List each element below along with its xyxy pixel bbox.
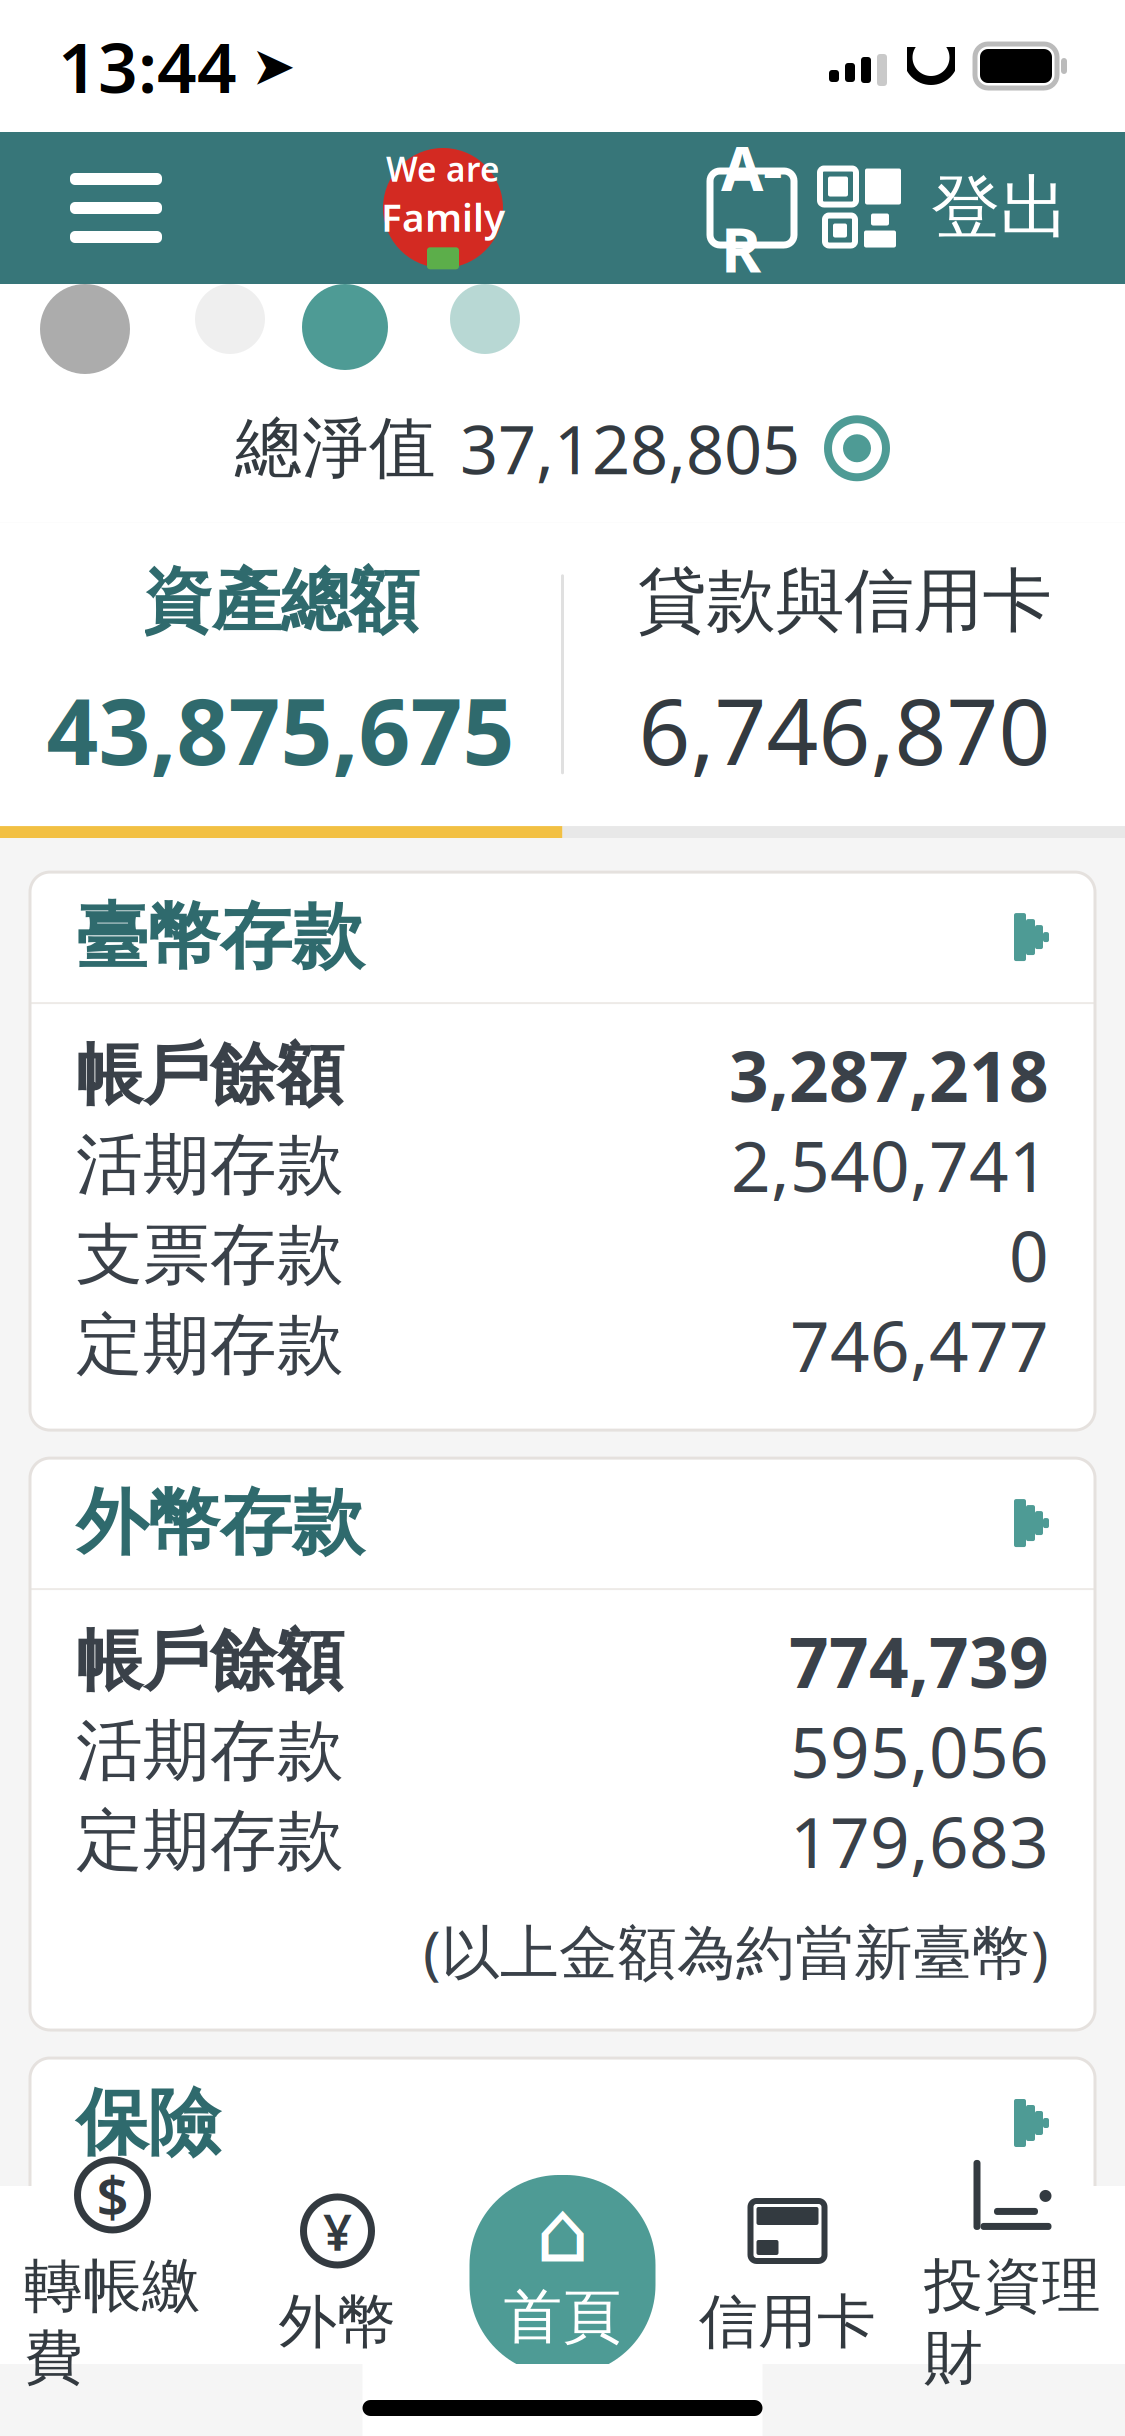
staticText: 活期存款 [76, 1710, 344, 1792]
staticText: (以上金額為約當新臺幣) [423, 1912, 1049, 1990]
button[interactable]: We are Family 首頁 [378, 143, 508, 273]
staticText: 774,739 [789, 1615, 1049, 1707]
staticText: 746,477 [790, 1299, 1049, 1391]
staticText: 37,128,805 [460, 404, 800, 492]
staticText: 定期存款 [76, 1304, 344, 1386]
staticText: $ [96, 2158, 128, 2232]
staticText: 信用卡 [699, 2286, 876, 2358]
staticText: 6,746,870 [638, 670, 1050, 790]
button[interactable]: 資產總額 [0, 522, 561, 826]
staticText: AR [721, 127, 783, 289]
button[interactable]: ⌂ [450, 2186, 675, 2364]
staticText: 臺幣存款 [76, 893, 364, 981]
staticText: 活期存款 [76, 1124, 344, 1206]
staticText: 定期存款 [76, 1800, 344, 1882]
staticText: 登出 [931, 165, 1069, 251]
button[interactable]: 選單 [56, 148, 176, 268]
button[interactable]: 登出 [901, 158, 1069, 258]
staticText: 3,287,218 [729, 1029, 1049, 1121]
staticText: ¥ [323, 2197, 352, 2265]
button[interactable]: 顯示或隱藏金額 [824, 415, 890, 481]
staticText: ⌂ [535, 2183, 589, 2280]
staticText: 投資理財 [924, 2250, 1101, 2394]
button[interactable]: AR 體驗 [710, 171, 794, 245]
button[interactable]: 臺幣存款 [30, 872, 1095, 1002]
staticText: ➤ [251, 36, 296, 96]
button[interactable]: 信用卡 [675, 2186, 900, 2364]
staticText: 轉帳繳費 [24, 2250, 201, 2394]
staticText: 帳戶餘額 [76, 1034, 344, 1116]
staticText: 2,540,741 [731, 1119, 1049, 1211]
button[interactable]: 投資理財 [900, 2186, 1125, 2364]
staticText: 179,683 [790, 1795, 1049, 1887]
staticText: 貸款與信用卡 [637, 558, 1051, 644]
staticText: 帳戶餘額 [76, 1620, 344, 1702]
staticText: 資產總額 [142, 558, 418, 644]
staticText: 595,056 [790, 1705, 1049, 1797]
staticText: 43,875,675 [46, 670, 514, 790]
button[interactable]: 保險 [30, 2058, 1095, 2188]
button[interactable]: 外幣存款 [30, 1458, 1095, 1588]
button[interactable]: 貸款與信用卡 [564, 522, 1125, 826]
staticText: Family [381, 191, 505, 242]
staticText: 外幣 [278, 2286, 396, 2358]
staticText: 支票存款 [76, 1214, 344, 1296]
staticText: 13:44 [58, 20, 237, 112]
staticText: We are [386, 147, 500, 191]
button[interactable]: ¥ [225, 2186, 450, 2364]
staticText: 總淨值 [235, 407, 436, 489]
button[interactable]: $ [0, 2186, 225, 2364]
button[interactable]: 掃描 QR Code [794, 168, 901, 247]
staticText: 保險 [76, 2079, 220, 2167]
staticText: 外幣存款 [76, 1479, 364, 1567]
staticText: 0 [1009, 1209, 1049, 1301]
staticText: 首頁 [503, 2281, 621, 2353]
